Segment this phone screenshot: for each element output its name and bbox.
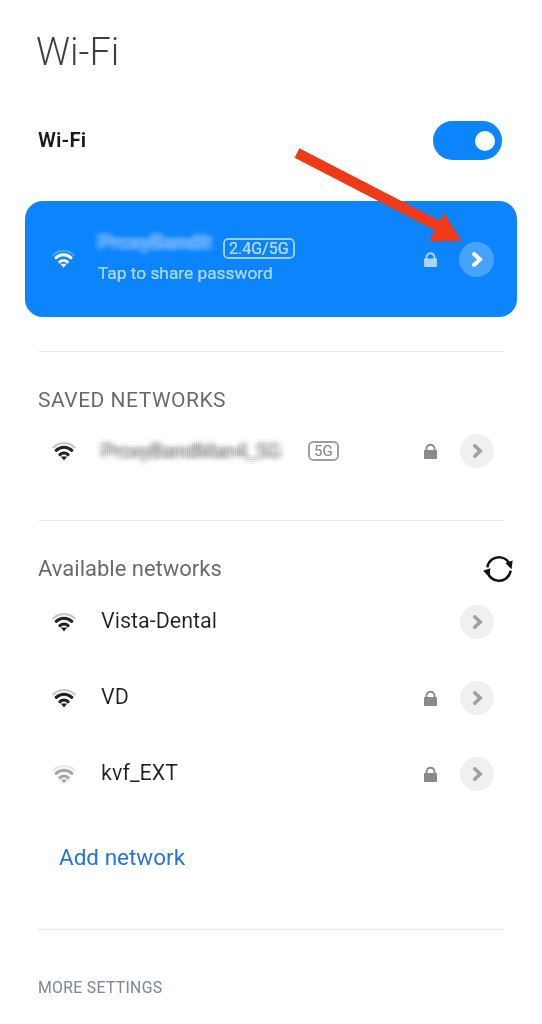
- button[interactable]: ProxyBandMan4_5G: [0, 423, 542, 479]
- staticText: ProxyBandMan4_5G: [101, 437, 281, 460]
- staticText: Vista-Dental: [101, 608, 218, 633]
- staticText: ProxyBandit: [98, 230, 212, 255]
- staticText: ProxyBandit: [94, 226, 208, 251]
- staticText: ProxyBandMan4_5G: [99, 435, 279, 458]
- staticText: ProxyBandMan4_5G: [105, 437, 285, 460]
- staticText: ProxyBandit: [100, 228, 214, 253]
- staticText: ProxyBandit: [98, 232, 212, 257]
- button[interactable]: Network details: [460, 681, 494, 715]
- staticText: ProxyBandMan4_5G: [99, 439, 279, 462]
- staticText: SAVED NETWORKS: [38, 388, 227, 413]
- staticText: ProxyBandit: [98, 228, 212, 253]
- staticText: ProxyBandMan4_5G: [101, 439, 281, 462]
- staticText: ProxyBandit: [104, 226, 218, 251]
- staticText: ProxyBandMan4_5G: [99, 443, 279, 466]
- staticText: ProxyBandit: [92, 232, 206, 257]
- staticText: 5G: [314, 442, 333, 460]
- staticText: ProxyBandMan4_5G: [97, 441, 277, 464]
- staticText: ProxyBandit: [100, 232, 214, 257]
- staticText: ProxyBandit: [92, 226, 206, 251]
- button[interactable]: Network details: [460, 605, 494, 639]
- staticText: ProxyBandit: [94, 228, 208, 253]
- staticText: ProxyBandit: [102, 234, 216, 259]
- staticText: ProxyBandit: [100, 226, 214, 251]
- button[interactable]: Network details: [460, 434, 494, 468]
- button[interactable]: ProxyBandit: [25, 201, 517, 317]
- staticText: ProxyBandit: [102, 226, 216, 251]
- staticText: ProxyBandMan4_5G: [105, 435, 285, 458]
- staticText: ProxyBandMan4_5G: [103, 435, 283, 458]
- staticText: ProxyBandMan4_5G: [99, 437, 279, 460]
- button[interactable]: kvf_EXT: [0, 746, 542, 802]
- staticText: ProxyBandit: [104, 230, 218, 255]
- staticText: ProxyBandit: [100, 230, 214, 255]
- staticText: ProxyBandit: [94, 230, 208, 255]
- staticText: ProxyBandMan4_5G: [95, 443, 275, 466]
- staticText: ProxyBandit: [98, 234, 212, 259]
- staticText: ProxyBandMan4_5G: [101, 441, 281, 464]
- staticText: ProxyBandit: [104, 234, 218, 259]
- staticText: 2.4G/5G: [229, 239, 289, 258]
- staticText: ProxyBandMan4_5G: [97, 439, 277, 462]
- button[interactable]: Network details: [460, 757, 494, 791]
- staticText: ProxyBandit: [96, 228, 210, 253]
- staticText: ProxyBandit: [96, 226, 210, 251]
- button[interactable]: Refresh: [483, 553, 515, 585]
- button[interactable]: Network details: [459, 242, 494, 277]
- staticText: ProxyBandMan4_5G: [95, 437, 275, 460]
- staticText: ProxyBandit: [92, 228, 206, 253]
- staticText: ProxyBandMan4_5G: [95, 441, 275, 464]
- staticText: ProxyBandMan4_5G: [97, 435, 277, 458]
- staticText: ProxyBandit: [102, 232, 216, 257]
- staticText: ProxyBandit: [96, 232, 210, 257]
- staticText: ProxyBandMan4_5G: [95, 435, 275, 458]
- staticText: ProxyBandit: [96, 230, 210, 255]
- staticText: ProxyBandit: [104, 228, 218, 253]
- staticText: ProxyBandMan4_5G: [107, 439, 287, 462]
- staticText: ProxyBandit: [104, 232, 218, 257]
- staticText: MORE SETTINGS: [38, 978, 163, 997]
- staticText: ProxyBandMan4_5G: [107, 441, 287, 464]
- staticText: ProxyBandMan4_5G: [107, 443, 287, 466]
- staticText: ProxyBandit: [92, 230, 206, 255]
- staticText: ProxyBandit: [92, 234, 206, 259]
- staticText: ProxyBandit: [102, 230, 216, 255]
- staticText: Add network: [59, 844, 186, 870]
- staticText: ProxyBandMan4_5G: [105, 439, 285, 462]
- button[interactable]: VD: [0, 670, 542, 726]
- staticText: ProxyBandMan4_5G: [107, 437, 287, 460]
- staticText: ProxyBandMan4_5G: [103, 437, 283, 460]
- staticText: ProxyBandMan4_5G: [103, 443, 283, 466]
- staticText: ProxyBandit: [94, 232, 208, 257]
- staticText: ProxyBandMan4_5G: [95, 439, 275, 462]
- staticText: ProxyBandMan4_5G: [103, 441, 283, 464]
- staticText: ProxyBandMan4_5G: [101, 443, 281, 466]
- staticText: ProxyBandit: [102, 228, 216, 253]
- staticText: Wi-Fi: [38, 128, 87, 152]
- button[interactable]: Wi-Fi: [0, 110, 542, 170]
- staticText: ProxyBandMan4_5G: [103, 439, 283, 462]
- button[interactable]: Wi-Fi toggle: [433, 121, 502, 160]
- staticText: Wi-Fi: [36, 30, 120, 75]
- staticText: ProxyBandMan4_5G: [105, 443, 285, 466]
- staticText: ProxyBandMan4_5G: [97, 437, 277, 460]
- staticText: ProxyBandMan4_5G: [97, 443, 277, 466]
- staticText: ProxyBandit: [100, 234, 214, 259]
- staticText: VD: [101, 684, 129, 709]
- staticText: ProxyBandMan4_5G: [99, 441, 279, 464]
- staticText: ProxyBandMan4_5G: [107, 435, 287, 458]
- staticText: ProxyBandMan4_5G: [105, 441, 285, 464]
- staticText: ProxyBandit: [98, 226, 212, 251]
- button[interactable]: Add network: [38, 832, 207, 882]
- staticText: ProxyBandMan4_5G: [101, 435, 281, 458]
- staticText: Available networks: [38, 556, 222, 582]
- staticText: kvf_EXT: [101, 760, 179, 785]
- button[interactable]: Vista-Dental: [0, 594, 542, 650]
- staticText: ProxyBandit: [96, 234, 210, 259]
- staticText: ProxyBandit: [94, 234, 208, 259]
- staticText: Tap to share password: [98, 263, 273, 283]
